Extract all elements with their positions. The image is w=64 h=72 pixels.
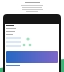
button[interactable] (6, 51, 58, 63)
